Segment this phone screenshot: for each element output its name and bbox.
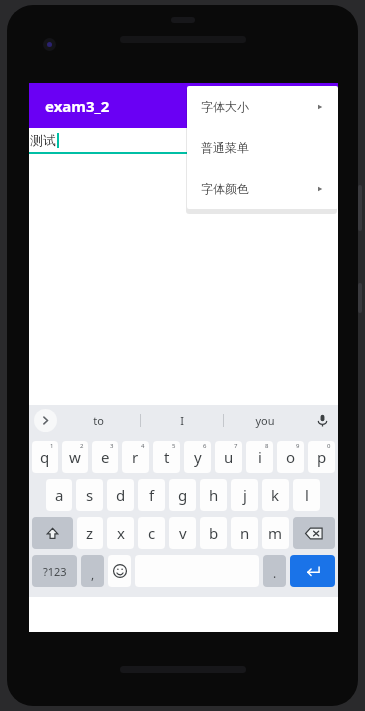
- button[interactable]: x: [107, 517, 134, 549]
- staticText: to: [93, 413, 104, 428]
- staticText: 字体大小: [201, 99, 249, 114]
- button[interactable]: ?123: [32, 555, 77, 587]
- button[interactable]: exam3_2: [29, 83, 338, 128]
- button[interactable]: z: [77, 517, 103, 549]
- button[interactable]: l: [293, 479, 320, 511]
- button[interactable]: u: [215, 441, 242, 473]
- staticText: d: [116, 485, 126, 505]
- button[interactable]: w: [62, 441, 88, 473]
- staticText: u: [224, 447, 234, 467]
- button[interactable]: Period: [263, 555, 286, 587]
- staticText: g: [178, 485, 188, 505]
- button[interactable]: Enter: [290, 555, 335, 587]
- staticText: q: [40, 447, 50, 467]
- button[interactable]: c: [138, 517, 165, 549]
- staticText: a: [55, 485, 64, 505]
- button[interactable]: q: [32, 441, 58, 473]
- button[interactable]: p: [308, 441, 335, 473]
- button[interactable]: o: [277, 441, 304, 473]
- button[interactable]: f: [138, 479, 165, 511]
- staticText: 8: [265, 442, 269, 450]
- button[interactable]: Expand suggestions: [34, 409, 57, 432]
- button[interactable]: Shift: [32, 517, 73, 549]
- staticText: f: [149, 485, 155, 505]
- button[interactable]: Voice input: [306, 405, 338, 436]
- staticText: 0: [327, 442, 331, 450]
- button[interactable]: b: [200, 517, 227, 549]
- staticText: ,: [91, 566, 95, 582]
- staticText: y: [194, 447, 202, 467]
- staticText: I: [180, 413, 184, 428]
- staticText: .: [273, 565, 277, 581]
- staticText: 普通菜单: [201, 140, 249, 155]
- button[interactable]: Comma: [81, 555, 104, 587]
- staticText: h: [209, 485, 219, 505]
- button[interactable]: m: [262, 517, 289, 549]
- button[interactable]: e: [92, 441, 118, 473]
- staticText: p: [317, 447, 327, 467]
- staticText: l: [305, 485, 309, 505]
- staticText: s: [86, 485, 94, 505]
- staticText: v: [179, 523, 187, 543]
- button[interactable]: s: [76, 479, 103, 511]
- button[interactable]: k: [262, 479, 289, 511]
- staticText: b: [209, 523, 219, 543]
- staticText: w: [69, 447, 81, 467]
- staticText: c: [148, 523, 156, 543]
- staticText: j: [243, 485, 247, 505]
- button[interactable]: I: [141, 405, 223, 436]
- button[interactable]: a: [46, 479, 72, 511]
- button[interactable]: t: [153, 441, 180, 473]
- staticText: 测试: [30, 132, 56, 148]
- button[interactable]: n: [231, 517, 258, 549]
- staticText: k: [271, 485, 280, 505]
- button[interactable]: d: [107, 479, 134, 511]
- staticText: z: [86, 523, 94, 543]
- staticText: n: [240, 523, 250, 543]
- button[interactable]: v: [169, 517, 196, 549]
- staticText: 2: [80, 442, 84, 450]
- staticText: 7: [234, 442, 238, 450]
- button[interactable]: you: [224, 405, 306, 436]
- button[interactable]: 普通菜单: [187, 127, 338, 168]
- staticText: 9: [296, 442, 300, 450]
- staticText: r: [132, 447, 139, 467]
- staticText: x: [117, 523, 125, 543]
- button[interactable]: r: [122, 441, 149, 473]
- staticText: 字体颜色: [201, 181, 249, 196]
- button[interactable]: 字体颜色: [187, 168, 338, 209]
- button[interactable]: i: [246, 441, 273, 473]
- button[interactable]: 测试: [29, 128, 338, 152]
- staticText: exam3_2: [45, 96, 110, 116]
- button[interactable]: Emoji: [108, 555, 131, 587]
- staticText: 5: [172, 442, 176, 450]
- button[interactable]: j: [231, 479, 258, 511]
- staticText: ?123: [43, 564, 67, 579]
- staticText: i: [258, 447, 262, 467]
- staticText: 1: [50, 442, 54, 450]
- staticText: 3: [110, 442, 114, 450]
- staticText: t: [164, 447, 170, 467]
- staticText: m: [268, 523, 283, 543]
- staticText: o: [286, 447, 296, 467]
- button[interactable]: h: [200, 479, 227, 511]
- staticText: you: [255, 413, 275, 428]
- staticText: 6: [203, 442, 207, 450]
- button[interactable]: y: [184, 441, 211, 473]
- button[interactable]: Backspace: [293, 517, 335, 549]
- button[interactable]: 字体大小: [187, 86, 338, 127]
- button[interactable]: g: [169, 479, 196, 511]
- button[interactable]: to: [57, 405, 140, 436]
- staticText: e: [101, 447, 110, 467]
- staticText: 4: [141, 442, 145, 450]
